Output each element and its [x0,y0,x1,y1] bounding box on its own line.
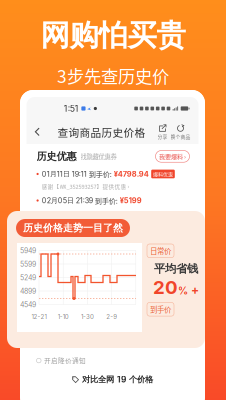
staticText: ¥4798.94 [114,169,149,178]
button[interactable]: Back [26,120,48,143]
button[interactable]: 我要爆料 › [155,150,189,162]
staticText: 4899 [20,287,36,295]
staticText: 平均省钱 [154,262,198,276]
staticText: 换个商品 [170,133,190,140]
staticText: 日常价 [150,245,171,256]
staticText: 到手价 [150,304,171,315]
staticText: 1:51 [64,103,79,114]
button[interactable]: 分享 [154,124,170,140]
staticText: 我要爆料 › [159,152,186,161]
staticText: 12-21 [32,313,47,320]
button[interactable]: 开启降价通知 [36,352,86,369]
staticText: 感谢【wx_352593257】提供优惠 › [41,182,129,190]
staticText: 5249 [20,274,36,282]
staticText: 历史价格走势一目了然 [23,222,123,234]
staticText: 5599 [20,260,36,268]
staticText: % [178,285,188,297]
staticText: 5949 [20,247,36,255]
staticText: 到手价: [87,169,114,179]
staticText: ¥5199 [120,196,142,205]
staticText: 找隐藏优惠券 [80,152,116,161]
staticText: 网购怕买贵 [40,17,185,54]
staticText: 01月11日 19:11 [42,169,87,178]
button[interactable]: 换个商品 [170,124,190,140]
staticText: 到手价: [93,195,120,206]
staticText: 2-9 [106,313,117,320]
staticText: 02月05日 21:39 [42,196,93,205]
staticText: 对比全网 [82,374,114,385]
staticText: 分享 [157,133,167,140]
staticText: 19 [117,375,126,385]
staticText: 个价格 [129,374,153,385]
staticText: 1-30 [81,313,94,320]
staticText: 1-10 [58,313,69,320]
staticText: 4549 [20,301,36,309]
staticText: 20 [153,276,178,298]
staticText: + [188,282,199,297]
staticText: 3步先查历史价 [57,63,169,88]
staticText: 爆料优惠 [153,170,173,178]
staticText: 开启降价通知 [44,356,86,365]
staticText: 历史优惠 [36,150,76,163]
staticText: 查询商品历史价格 [57,124,145,140]
